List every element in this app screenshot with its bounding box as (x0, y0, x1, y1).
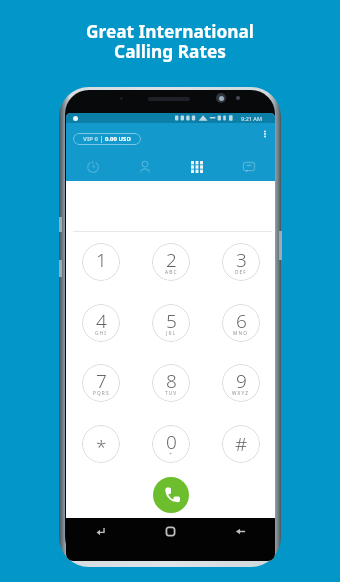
button[interactable]: Dialpad (171, 155, 223, 181)
staticText: DEF (235, 269, 247, 276)
staticText: GHI (95, 330, 107, 337)
staticText: 7 (96, 368, 107, 394)
staticText: 0.00 USD (105, 135, 131, 143)
staticText: WXYZ (232, 390, 250, 397)
staticText: Great International Calling Rates (0, 20, 340, 63)
staticText: TUV (165, 390, 178, 397)
button[interactable]: Back (205, 518, 275, 544)
button[interactable]: Voicemail (223, 155, 275, 181)
button[interactable]: VIP 0 (73, 133, 141, 145)
button[interactable]: Call (153, 477, 189, 513)
button[interactable]: 6 (222, 304, 260, 342)
staticText: 2 (166, 247, 177, 273)
button[interactable]: More options (258, 127, 272, 141)
staticText: 9 (236, 368, 247, 394)
staticText: MNO (233, 330, 249, 337)
staticText: ABC (165, 269, 178, 276)
staticText: 4 (96, 308, 107, 334)
button[interactable]: 0 (152, 425, 190, 463)
button[interactable]: 2 (152, 243, 190, 281)
button[interactable]: Contacts (119, 155, 171, 181)
button[interactable]: 4 (82, 304, 120, 342)
staticText: 5 (166, 308, 177, 334)
button[interactable]: * (82, 425, 120, 463)
staticText: # (235, 431, 248, 457)
button[interactable]: Recent calls (66, 155, 119, 181)
staticText: PQRS (93, 390, 110, 397)
button[interactable]: 1 (82, 243, 120, 281)
staticText: VIP 0 (83, 135, 98, 143)
button[interactable]: 9 (222, 364, 260, 402)
staticText: 0 (166, 429, 177, 455)
staticText: 6 (236, 308, 247, 334)
staticText: * (96, 434, 107, 460)
staticText: JKL (166, 330, 177, 337)
button[interactable]: 7 (82, 364, 120, 402)
staticText: + (169, 451, 173, 458)
staticText: 8 (166, 368, 177, 394)
button[interactable]: # (222, 425, 260, 463)
staticText: 1 (96, 247, 107, 273)
button[interactable]: 8 (152, 364, 190, 402)
button[interactable]: Recents (66, 518, 135, 544)
button[interactable]: 5 (152, 304, 190, 342)
staticText: 3 (236, 247, 247, 273)
button[interactable]: Home (135, 518, 205, 544)
staticText: 9:21 AM (241, 115, 263, 122)
button[interactable]: 3 (222, 243, 260, 281)
